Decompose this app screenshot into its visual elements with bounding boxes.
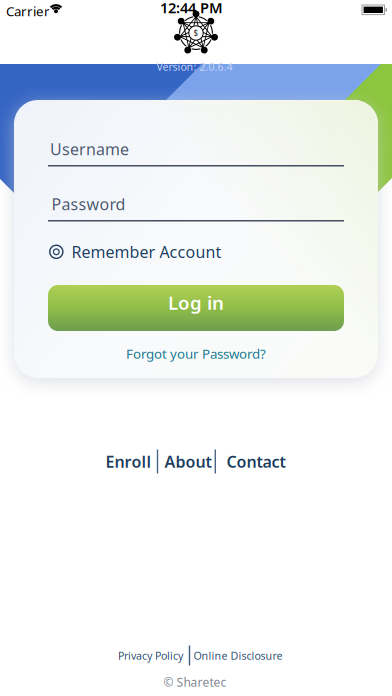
staticText: © Sharetec [163,674,226,690]
staticText: Privacy Policy [118,648,183,663]
button[interactable]: Contact [226,451,285,472]
staticText: Forgot your Password? [126,345,266,362]
staticText: 12:44 PM [160,0,223,17]
staticText: Username [50,138,129,160]
staticText: Version: 2.0.6.4 [156,59,232,74]
button[interactable]: Online Disclosure [193,648,282,663]
button[interactable]: Enroll [105,451,151,472]
button[interactable]: Username [48,137,344,166]
staticText: Enroll [105,451,151,472]
staticText: Carrier [6,2,50,20]
staticText: $ [193,28,198,38]
staticText: Password [51,193,125,215]
button[interactable]: Log in [48,285,344,331]
staticText: Remember Account [71,241,221,262]
button[interactable]: Privacy Policy [118,648,183,663]
staticText: Log in [168,290,224,315]
staticText: Contact [226,451,285,472]
button[interactable]: About [164,451,211,472]
button[interactable]: Remember Account [49,241,221,262]
button[interactable]: Forgot your Password? [126,345,266,362]
staticText: About [164,451,211,472]
staticText: Online Disclosure [193,648,282,663]
button[interactable]: Password [48,192,344,221]
